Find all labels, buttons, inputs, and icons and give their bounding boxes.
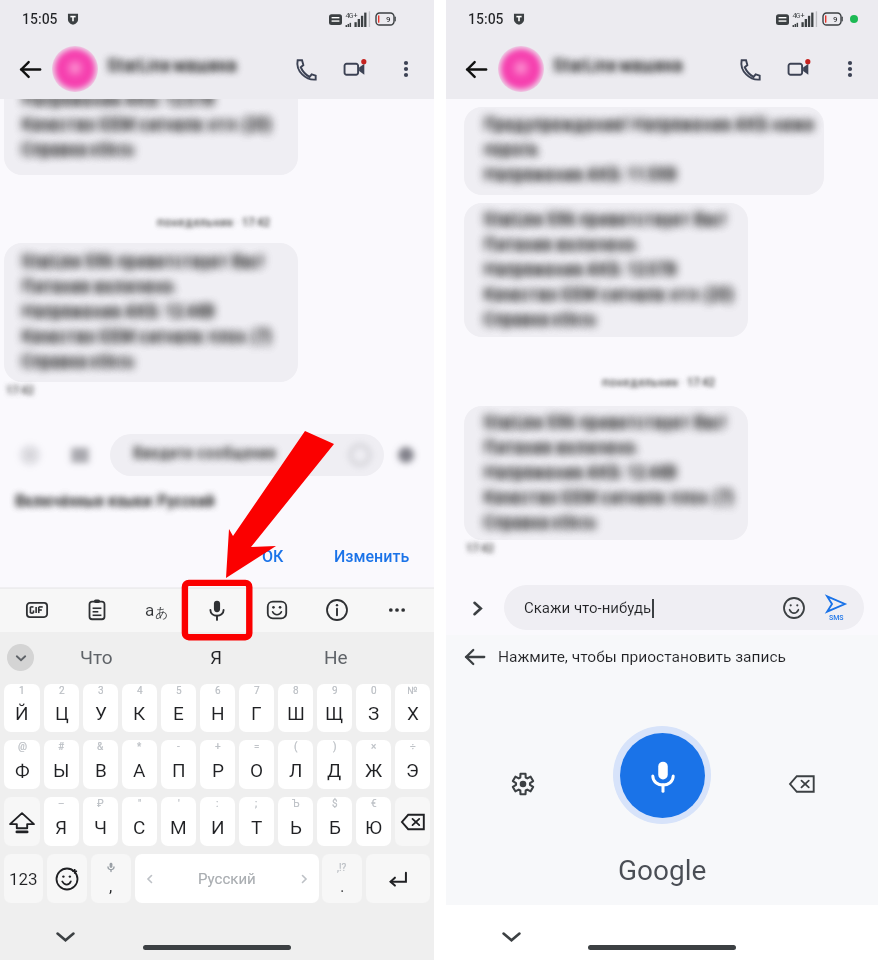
button[interactable]: Emoji (780, 594, 808, 622)
staticText: Л (289, 759, 303, 781)
button[interactable]: : (200, 797, 235, 846)
button[interactable]: Скажи что-нибудь (504, 585, 864, 630)
button[interactable]: + (200, 740, 235, 789)
button[interactable]: × (356, 740, 391, 789)
button[interactable]: Hide keyboard (48, 919, 82, 953)
button[interactable]: Video call (778, 47, 822, 91)
button[interactable]: 3 (83, 684, 118, 732)
button[interactable] (464, 406, 748, 540)
button[interactable]: Clipboard (74, 588, 120, 632)
button[interactable] (464, 203, 748, 337)
button[interactable]: & (83, 740, 118, 789)
button[interactable]: 1 (4, 684, 40, 732)
button[interactable]: - (161, 740, 196, 789)
button[interactable]: Ъ (278, 797, 313, 846)
button[interactable]: Shift (4, 797, 40, 846)
button[interactable]: ÷ (395, 740, 430, 789)
button[interactable]: Emoji (47, 854, 87, 903)
button[interactable]: 123 (4, 854, 43, 903)
button[interactable]: Enter (366, 854, 430, 903)
staticText: ÷ (410, 741, 416, 753)
button[interactable] (110, 434, 384, 476)
button[interactable]: Backspace (782, 764, 822, 804)
staticText: М (170, 816, 187, 838)
button[interactable] (107, 38, 284, 99)
button[interactable]: Backspace (395, 797, 430, 846)
button[interactable]: ( (278, 740, 313, 789)
button[interactable]: Translate (134, 588, 180, 632)
button[interactable]: 6 (200, 684, 235, 732)
button[interactable]: Stickers (254, 588, 300, 632)
button[interactable]: More (374, 588, 420, 632)
button[interactable]: Я (156, 632, 276, 682)
staticText: Й (15, 702, 29, 724)
button[interactable]: Call (284, 47, 328, 91)
button[interactable]: ОК (248, 539, 298, 574)
button[interactable]: Contact avatar (52, 46, 98, 92)
button[interactable]: Camera (388, 437, 424, 473)
button[interactable]: More options (828, 47, 872, 91)
button[interactable] (4, 243, 298, 382)
button[interactable]: Info (314, 588, 360, 632)
button[interactable]: Не (276, 632, 396, 682)
staticText: Щ (325, 702, 344, 724)
button[interactable]: GIF (14, 588, 60, 632)
button[interactable]: 9 (317, 684, 352, 732)
staticText: Что (80, 646, 113, 668)
staticText: 9 (386, 15, 391, 24)
staticText: , (109, 876, 113, 896)
staticText: - (177, 741, 180, 753)
button[interactable]: 7 (239, 684, 274, 732)
button[interactable]: Video call (334, 47, 378, 91)
button[interactable] (464, 107, 824, 195)
button[interactable]: Что (36, 632, 156, 682)
button[interactable]: Изменить (320, 539, 424, 574)
button[interactable]: 2 (44, 684, 79, 732)
button[interactable]: 4 (122, 684, 157, 732)
staticText: @ (18, 741, 27, 753)
button[interactable]: – (44, 797, 79, 846)
staticText: Ы (53, 759, 70, 781)
button[interactable]: ) (317, 740, 352, 789)
button[interactable]: More options (384, 47, 428, 91)
button[interactable]: ,!? (322, 854, 362, 903)
button[interactable]: Settings (503, 764, 543, 804)
button[interactable]: Русский (135, 854, 319, 903)
staticText: Ц (55, 702, 69, 724)
button[interactable]: Expand (462, 593, 492, 623)
button[interactable]: = (239, 740, 274, 789)
button[interactable]: Нажмите, чтобы приостановить запись (446, 638, 878, 676)
button[interactable]: Expand suggestions (7, 644, 34, 671)
staticText: 4 (137, 685, 143, 697)
button[interactable]: Microphone (613, 726, 711, 824)
button[interactable]: € (356, 797, 391, 846)
button[interactable]: Contact avatar (498, 46, 544, 92)
button[interactable]: Gallery (62, 437, 98, 473)
button[interactable]: Back (456, 49, 496, 89)
button[interactable]: Voice input (194, 588, 240, 632)
button[interactable]: # (44, 740, 79, 789)
staticText: Р (212, 759, 224, 781)
button[interactable] (4, 99, 298, 175)
button[interactable]: ₽ (83, 797, 118, 846)
button[interactable]: ; (239, 797, 274, 846)
button[interactable] (553, 38, 728, 99)
button[interactable]: " (122, 797, 157, 846)
staticText: $ (332, 798, 338, 810)
staticText: Н (211, 702, 225, 724)
button[interactable]: Back (10, 49, 50, 89)
staticText: Ш (287, 702, 305, 724)
button[interactable]: ' (161, 797, 196, 846)
button[interactable]: , (91, 854, 131, 903)
button[interactable]: Send SMS (820, 592, 852, 624)
button[interactable]: 0 (356, 684, 391, 732)
button[interactable]: * (122, 740, 157, 789)
button[interactable]: Call (728, 47, 772, 91)
button[interactable]: Add (12, 437, 48, 473)
button[interactable]: $ (317, 797, 352, 846)
button[interactable]: Hide keyboard (494, 919, 528, 953)
button[interactable]: № (395, 684, 430, 732)
button[interactable]: 5 (161, 684, 196, 732)
button[interactable]: 8 (278, 684, 313, 732)
button[interactable]: @ (4, 740, 40, 789)
